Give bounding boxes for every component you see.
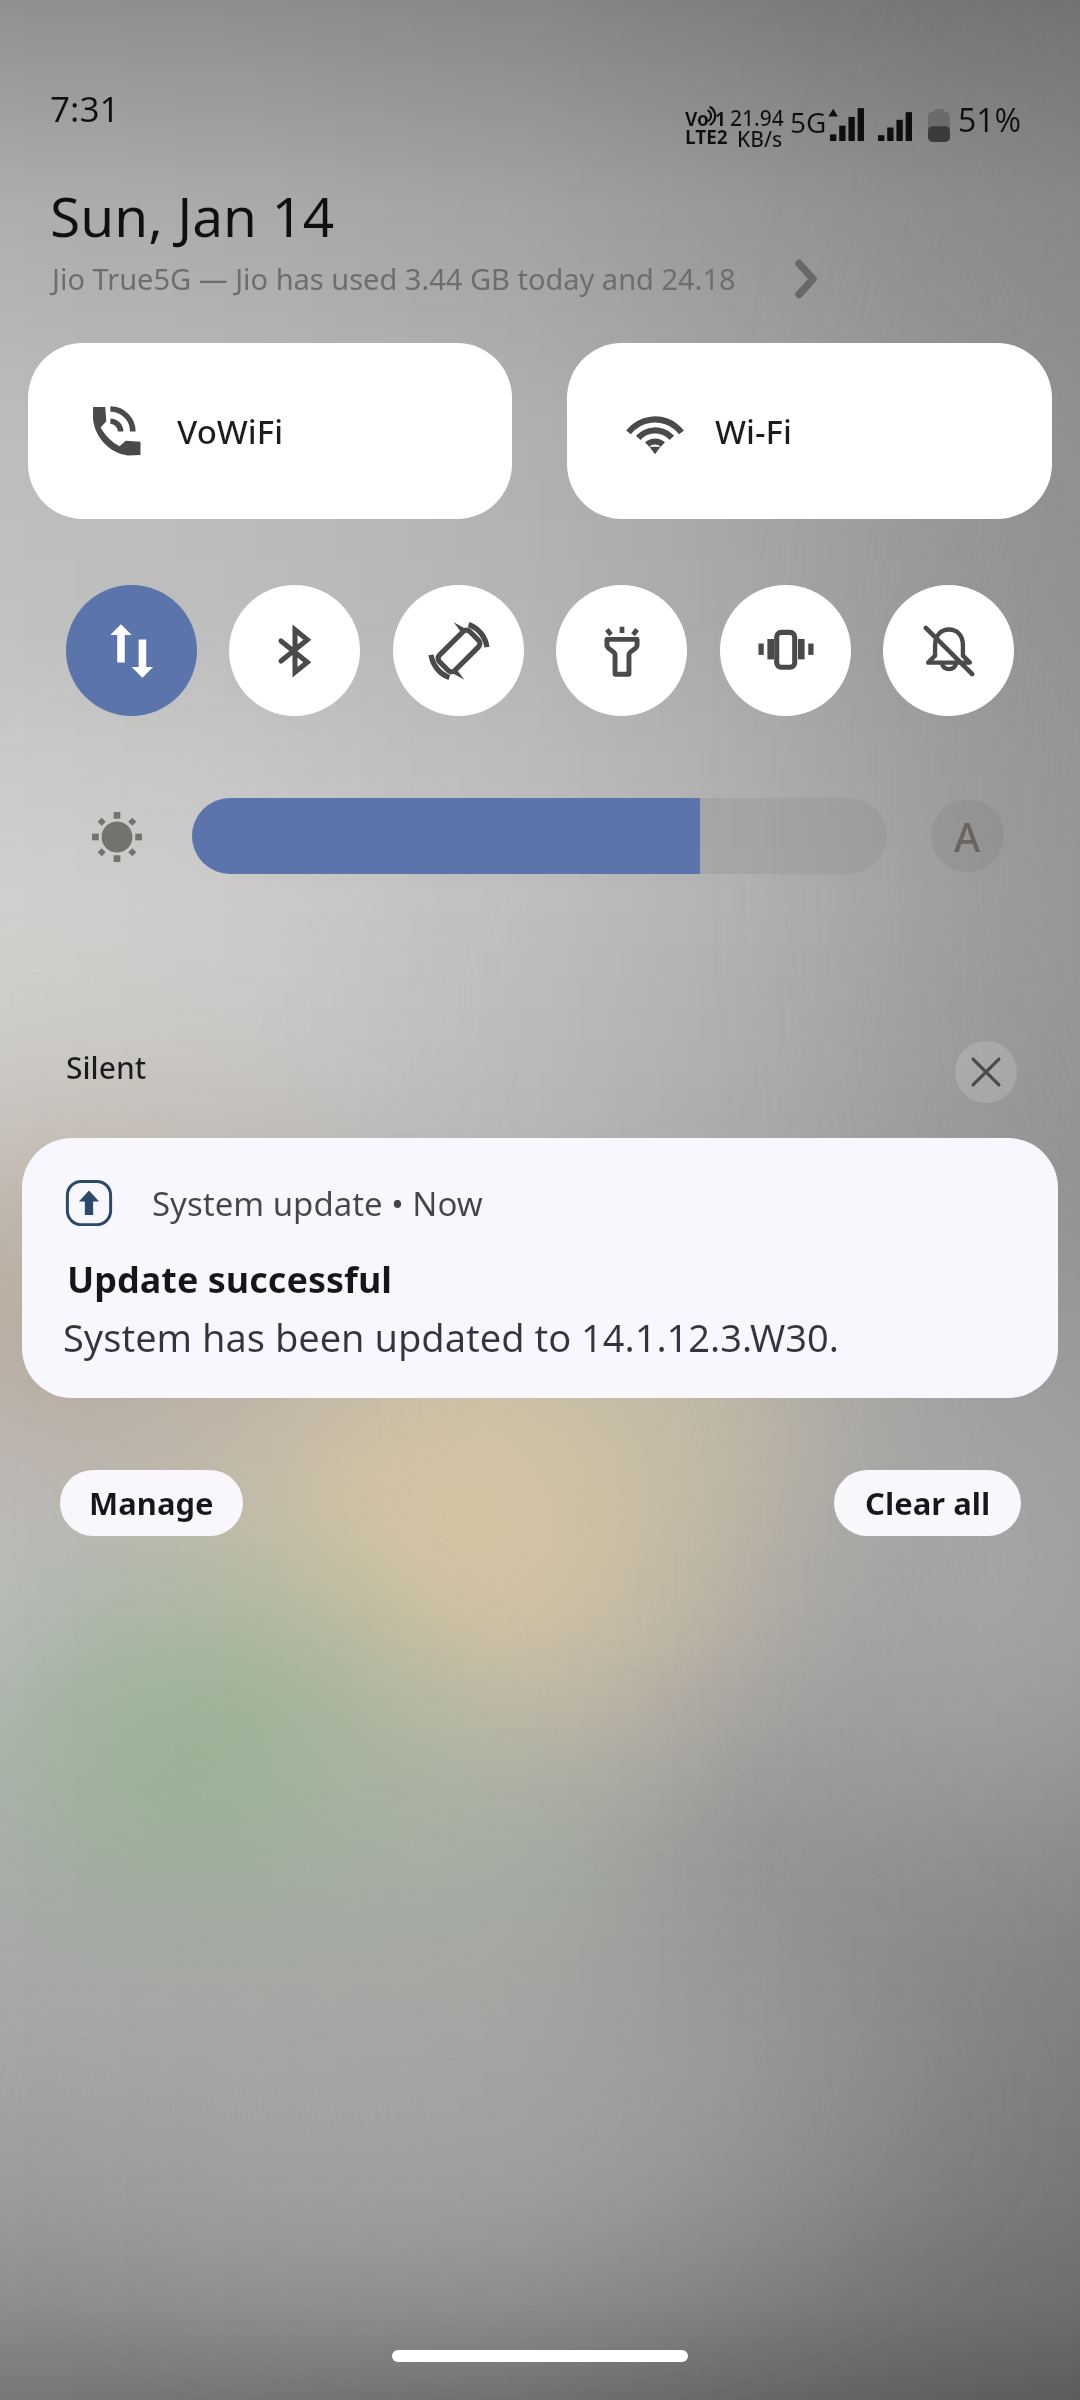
button[interactable]: Bluetooth <box>229 585 360 716</box>
staticText: 1 <box>715 106 726 132</box>
staticText: System has been updated to 14.1.12.3.W30… <box>63 1311 839 1363</box>
button[interactable]: System update • Now <box>22 1138 1058 1398</box>
button[interactable]: Flashlight <box>556 585 687 716</box>
button[interactable]: Manage <box>60 1470 243 1536</box>
staticText: System update • Now <box>152 1181 483 1226</box>
button[interactable]: Mobile data <box>66 585 197 716</box>
staticText: 21.94 <box>730 104 784 133</box>
staticText: VoWiFi <box>177 409 284 454</box>
staticText: 7:31 <box>50 85 120 133</box>
button[interactable] <box>192 798 887 874</box>
staticText: A <box>954 809 981 863</box>
staticText: Clear all <box>865 1482 991 1524</box>
button[interactable]: Vibrate <box>720 585 851 716</box>
button[interactable]: Jio True5G — Jio has used 3.44 GB today … <box>52 259 816 298</box>
staticText: 51% <box>958 98 1022 142</box>
button[interactable]: Auto brightness <box>931 799 1004 872</box>
staticText: KB/s <box>737 125 783 154</box>
button[interactable]: VoWiFi <box>28 343 512 519</box>
button[interactable]: Clear all <box>834 1470 1021 1536</box>
staticText: Update successful <box>67 1255 393 1304</box>
staticText: Vo <box>685 106 709 132</box>
staticText: Sun, Jan 14 <box>50 178 335 253</box>
button[interactable]: Mute <box>883 585 1014 716</box>
button[interactable]: Wi-Fi <box>567 343 1052 519</box>
button[interactable]: Auto rotate <box>393 585 524 716</box>
staticText: Manage <box>89 1482 214 1524</box>
staticText: Silent <box>66 1047 147 1088</box>
staticText: 5G <box>790 103 827 141</box>
staticText: Wi-Fi <box>715 409 792 454</box>
button[interactable]: Clear silent notifications <box>955 1041 1017 1103</box>
staticText: Jio True5G — Jio has used 3.44 GB today … <box>52 259 778 298</box>
staticText: LTE2 <box>685 124 728 150</box>
